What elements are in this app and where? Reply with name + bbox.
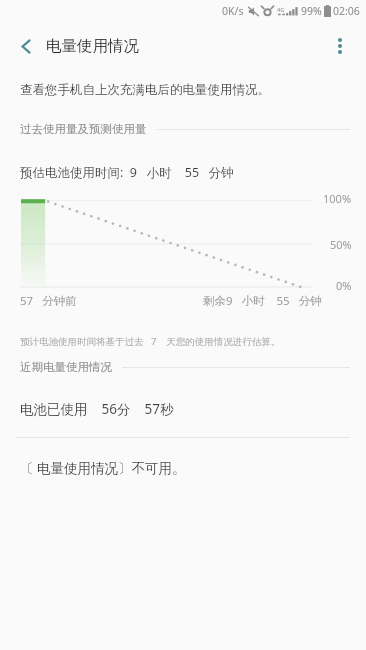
staticText: 100% (323, 191, 352, 206)
staticText: 57 分钟前 (20, 293, 77, 309)
staticText: 〔 电量使用情况〕不可用。 (20, 459, 186, 477)
staticText: 剩余9 小时 55 分钟 (203, 293, 322, 309)
staticText: 4G (277, 6, 285, 13)
staticText: 50% (330, 237, 352, 252)
staticText: 查看您手机自上次充满电后的电量使用情况。 (20, 82, 270, 98)
staticText: 0% (336, 278, 352, 293)
staticText: 近期电量使用情况 (20, 360, 112, 374)
button[interactable]: Back (4, 24, 48, 68)
button[interactable]: More options (319, 25, 361, 67)
staticText: 电池已使用 56分 57秒 (20, 400, 174, 418)
staticText: 02:06 (333, 4, 360, 18)
staticText: 预计电池使用时间将基于过去 7 天您的使用情况进行估算。 (20, 335, 281, 348)
staticText: 预估电池使用时间: 9 小时 55 分钟 (20, 164, 234, 181)
staticText: 99% (301, 4, 322, 18)
staticText: 0K/s (222, 4, 244, 18)
staticText: 过去使用量及预测使用量 (20, 122, 147, 136)
staticText: 电量使用情况 (46, 36, 139, 56)
